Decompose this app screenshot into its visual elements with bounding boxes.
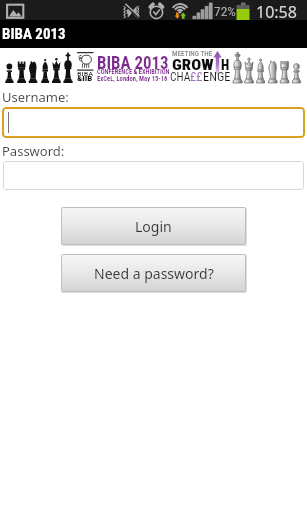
staticText: H [221,56,230,74]
staticText: ExCeL, London, May 15-16 [97,74,168,83]
staticText: Username: [2,88,69,106]
staticText: ENGE [203,70,231,84]
staticText: BIBA 2013 [97,51,169,73]
staticText: &IIB [77,75,93,83]
staticText: CONFERENCE & EXHIBITION [97,67,170,76]
staticText: GROW [172,56,214,74]
button[interactable] [2,107,305,138]
staticText: BIBA [77,70,93,77]
staticText: BIBA 2013 [2,25,66,43]
button[interactable] [3,161,304,190]
staticText: Password: [2,142,65,160]
staticText: Need a password? [94,264,214,283]
staticText: 10:58 [256,1,297,21]
staticText: CHA [170,70,191,84]
staticText: ££ [190,70,203,84]
button[interactable]: Need a password? [61,254,246,292]
button[interactable]: BIBA 2013 [0,20,307,48]
staticText: MEETING THE [172,50,213,58]
staticText: 72% [214,3,236,19]
staticText: Login [135,217,172,236]
button[interactable]: Login [61,207,246,245]
